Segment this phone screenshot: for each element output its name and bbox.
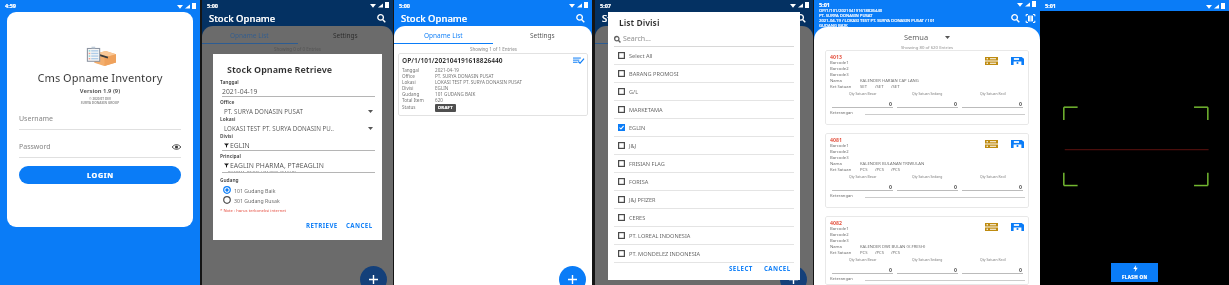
staticText: Semua (904, 32, 929, 42)
button[interactable]: Add (559, 266, 586, 285)
button[interactable]: CANCEL (761, 263, 794, 273)
staticText: © 2020/IT DEV (19, 97, 181, 101)
staticText: 301 Gudang Rusak (234, 197, 280, 204)
staticText: Stock Opname (602, 12, 669, 25)
button[interactable]: Opname List (202, 26, 297, 44)
staticText: SELECT (729, 264, 753, 272)
button[interactable]: 101 Gudang Baik (220, 184, 375, 194)
button[interactable]: FRISIAN FLAG (614, 155, 794, 172)
staticText: Stock Opname Retrieve (227, 63, 333, 75)
staticText: 2021-04-19 (435, 67, 584, 73)
staticText: Showing 0 of 0 Entries (681, 46, 728, 52)
staticText: /PCS (875, 167, 891, 173)
staticText: RETRIEVE (306, 221, 338, 229)
button[interactable]: Settings (493, 26, 592, 44)
staticText: PCS (860, 250, 875, 256)
staticText: * Note : harus terkoneksi internet (220, 208, 287, 214)
button[interactable]: EGLIN (220, 140, 375, 150)
staticText: Nama (830, 244, 860, 250)
staticText: Principal (220, 153, 241, 160)
staticText: EGLIN (230, 141, 375, 150)
staticText: Cms Opname Inventory (19, 70, 181, 85)
button[interactable]: MARKETAMA (614, 101, 794, 118)
staticText: Password (19, 142, 172, 152)
staticText: Nama (830, 78, 860, 84)
button[interactable]: LOGIN (19, 166, 181, 184)
staticText: 5:00 (399, 2, 410, 9)
staticText: Keterangan (830, 276, 865, 282)
staticText: Settings (333, 31, 358, 40)
button[interactable]: J&J PFIZER (614, 191, 794, 208)
button[interactable]: Search (375, 12, 387, 24)
button[interactable]: FORISA (614, 173, 794, 190)
button[interactable]: Search... (614, 34, 794, 44)
staticText: Qty Satuan Besar (849, 91, 877, 96)
button[interactable]: LOKASI TEST PT. SURYA DONASIN PU.. (220, 123, 375, 132)
button[interactable]: Password (19, 142, 181, 152)
other: Save (1011, 57, 1024, 65)
button[interactable]: RETRIEVE (304, 220, 340, 230)
staticText: 101 Gudang Baik (234, 187, 276, 194)
button[interactable]: 4082 (825, 216, 1029, 285)
staticText: Barcode3 (830, 155, 849, 161)
button[interactable]: Settings (704, 26, 813, 44)
other: History (985, 223, 998, 231)
button[interactable]: EGLIN (614, 119, 794, 136)
button[interactable]: 4013 (825, 50, 1029, 125)
button[interactable]: G/L (614, 83, 794, 100)
button[interactable]: Opname List (394, 26, 493, 44)
button[interactable]: SELECT (726, 263, 756, 273)
staticText: 0 (954, 183, 957, 190)
other: History (985, 140, 998, 148)
staticText: FRISIAN FLAG (629, 160, 665, 168)
button[interactable]: BARANG PROMOSI (614, 65, 794, 82)
staticText: Username (19, 114, 54, 124)
button[interactable]: Add (360, 266, 387, 285)
staticText: 0 (889, 266, 892, 273)
button[interactable]: Select All (614, 47, 794, 64)
button[interactable]: CERES (614, 209, 794, 226)
staticText: Tanggal (220, 79, 239, 86)
staticText: G/L (629, 88, 639, 96)
staticText: KALENDER DWI BULAN (V-FRESH) (860, 244, 926, 250)
button[interactable]: 301 Gudang Rusak (220, 194, 375, 204)
button[interactable]: Add (780, 266, 807, 285)
staticText: Qty Satuan Besar (849, 257, 877, 262)
staticText: 5:07 (600, 2, 611, 9)
staticText: Barcode1 (830, 143, 849, 149)
other: Show password (172, 144, 181, 150)
button[interactable]: Username (19, 114, 181, 130)
staticText: 2021-04-19 / LOKASI TEST PT. SURYA DONAS… (819, 18, 935, 23)
staticText: 101 GUDANG BAIK (435, 91, 584, 97)
button[interactable]: PT. SURYA DONASIN PUSAT (220, 106, 375, 115)
staticText: PT. LOREAL INDONESIA (629, 232, 691, 240)
staticText: Select All (629, 52, 653, 60)
staticText: Barcode1 (830, 226, 849, 232)
button[interactable]: Settings (297, 26, 393, 44)
staticText: /SET (891, 84, 900, 90)
button[interactable]: Search (574, 12, 586, 24)
button[interactable]: CANCEL (344, 220, 375, 230)
button[interactable]: PT. MONDELEZ INDONESIA (614, 245, 794, 262)
button[interactable]: J&J (614, 137, 794, 154)
button[interactable]: FLASH ON (1111, 263, 1158, 282)
other: Detail (573, 57, 584, 64)
button[interactable]: EAGLIN PHARMA, PT#EAGLIN (220, 160, 375, 170)
button[interactable]: Search (795, 12, 807, 24)
staticText: Showing 1 of 1 Entries (470, 46, 517, 52)
button[interactable]: Semua (904, 32, 950, 42)
staticText: /PCS (891, 250, 901, 256)
staticText: Keterangan (830, 110, 865, 116)
button[interactable]: Opname List (595, 26, 704, 44)
button[interactable]: Scan barcode (1024, 12, 1036, 24)
button[interactable]: Search (1009, 12, 1021, 24)
staticText: 0 (889, 100, 892, 107)
staticText: J&J PFIZER (629, 196, 656, 204)
button[interactable]: PT. LOREAL INDONESIA (614, 227, 794, 244)
button[interactable]: OP/1/101/202104191618826440 (398, 53, 588, 116)
staticText: Nama (830, 161, 860, 167)
button[interactable]: 4081 (825, 133, 1029, 208)
staticText: 4081 (830, 136, 842, 143)
staticText: Showing 80 of 620 Entries (901, 44, 954, 50)
staticText: Tanggal (402, 67, 435, 73)
